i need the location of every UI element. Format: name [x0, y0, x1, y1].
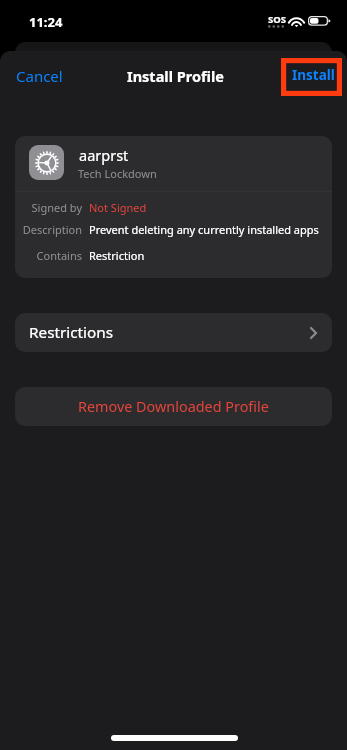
- staticText: Restrictions: [29, 322, 114, 343]
- button[interactable]: Restrictions: [15, 313, 332, 352]
- staticText: aarprst: [79, 145, 129, 165]
- staticText: Description: [0, 222, 82, 237]
- staticText: Cancel: [16, 66, 63, 86]
- staticText: Not Signed: [89, 200, 147, 215]
- staticText: Tech Lockdown: [78, 166, 157, 181]
- staticText: Restriction: [89, 248, 145, 263]
- staticText: 11:24: [29, 13, 63, 31]
- button[interactable]: Cancel: [1, 55, 78, 97]
- staticText: Contains: [0, 248, 82, 263]
- button[interactable]: Remove Downloaded Profile: [15, 387, 332, 426]
- other: Open Restrictions: [310, 327, 317, 339]
- staticText: SOS: [268, 13, 286, 26]
- staticText: Prevent deleting any currently installed…: [89, 222, 319, 237]
- staticText: Signed by: [0, 200, 82, 215]
- button[interactable]: Install: [277, 55, 347, 95]
- staticText: Install Profile: [127, 66, 224, 86]
- staticText: Remove Downloaded Profile: [78, 397, 269, 417]
- staticText: Install: [292, 66, 335, 84]
